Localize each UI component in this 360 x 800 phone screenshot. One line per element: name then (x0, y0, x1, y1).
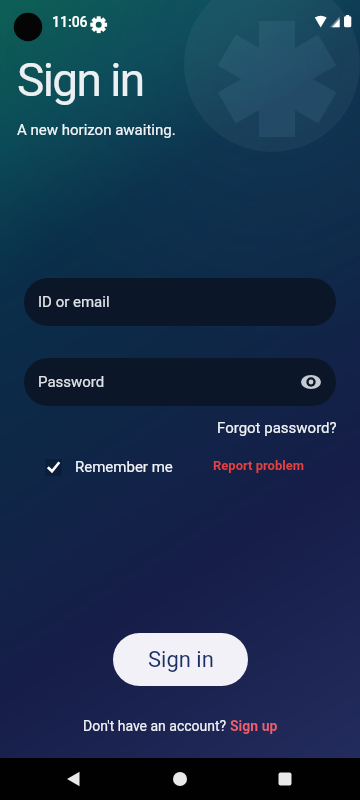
button[interactable] (59, 765, 87, 793)
staticText: 11:06 (52, 14, 88, 30)
button[interactable]: Forgot password? (217, 419, 337, 437)
staticText: Sign in (148, 647, 214, 673)
button[interactable]: Report problem (213, 458, 304, 473)
staticText: A new horizon awaiting. (17, 121, 176, 139)
staticText: Don't have an account? (83, 718, 230, 734)
button[interactable]: Sign up (230, 718, 278, 734)
button[interactable]: Remember me (45, 458, 173, 476)
staticText: Remember me (75, 458, 173, 476)
button[interactable] (271, 765, 299, 793)
button[interactable]: ID or email (24, 278, 336, 326)
button[interactable]: Sign in (113, 633, 248, 686)
button[interactable]: Password (24, 358, 336, 406)
staticText: ID or email (38, 293, 110, 311)
staticText: Sign in (17, 53, 144, 107)
button[interactable] (166, 765, 194, 793)
staticText: Password (38, 373, 105, 391)
